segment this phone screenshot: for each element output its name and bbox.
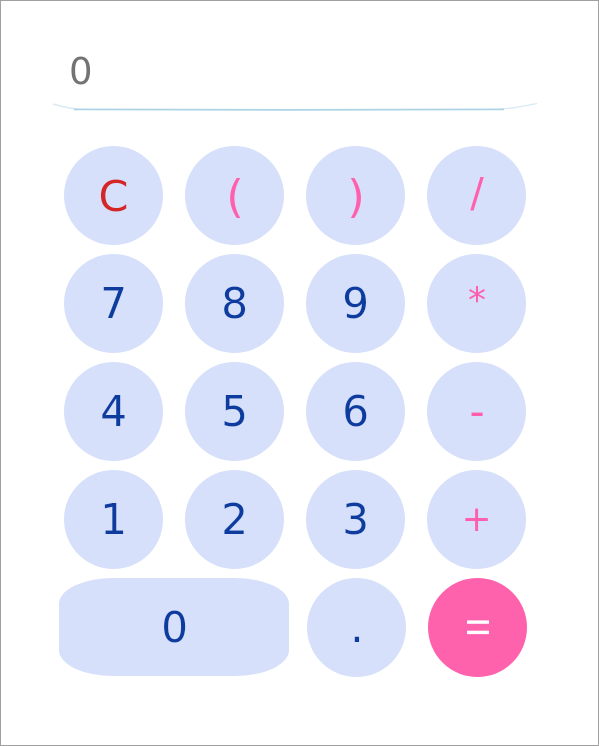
staticText: 6 (342, 387, 369, 436)
staticText: * (468, 279, 486, 321)
staticText: ( (226, 170, 244, 222)
button[interactable]: Equals (428, 578, 527, 677)
staticText: C (98, 171, 129, 221)
staticText: 4 (100, 387, 127, 436)
staticText: 1 (100, 495, 127, 544)
button[interactable]: Decimal point (307, 578, 406, 677)
button[interactable]: Subtract (427, 362, 526, 461)
button[interactable]: Multiply (427, 254, 526, 353)
button[interactable]: 0 (59, 578, 289, 676)
staticText: 7 (100, 279, 127, 328)
staticText: 0 (69, 50, 93, 93)
button[interactable]: 7 (64, 254, 163, 353)
staticText: . (350, 603, 364, 652)
button[interactable]: Clear (64, 146, 163, 245)
button[interactable]: 1 (64, 470, 163, 569)
staticText: / (470, 170, 484, 217)
staticText: 3 (342, 495, 369, 544)
button[interactable]: Add (427, 470, 526, 569)
button[interactable]: 3 (306, 470, 405, 569)
button[interactable]: 2 (185, 470, 284, 569)
button[interactable]: Close parenthesis (306, 146, 405, 245)
staticText: 9 (342, 279, 369, 328)
button[interactable]: 4 (64, 362, 163, 461)
button[interactable]: 8 (185, 254, 284, 353)
button[interactable]: Open parenthesis (185, 146, 284, 245)
button[interactable]: 9 (306, 254, 405, 353)
staticText: - (469, 387, 485, 436)
staticText: 8 (221, 279, 248, 328)
staticText: 2 (221, 495, 248, 544)
staticText: 0 (161, 603, 188, 652)
button[interactable]: Divide (427, 146, 526, 245)
staticText: ) (347, 170, 365, 222)
staticText: + (461, 498, 492, 540)
staticText: 5 (221, 387, 248, 436)
button[interactable]: 5 (185, 362, 284, 461)
button[interactable]: 6 (306, 362, 405, 461)
